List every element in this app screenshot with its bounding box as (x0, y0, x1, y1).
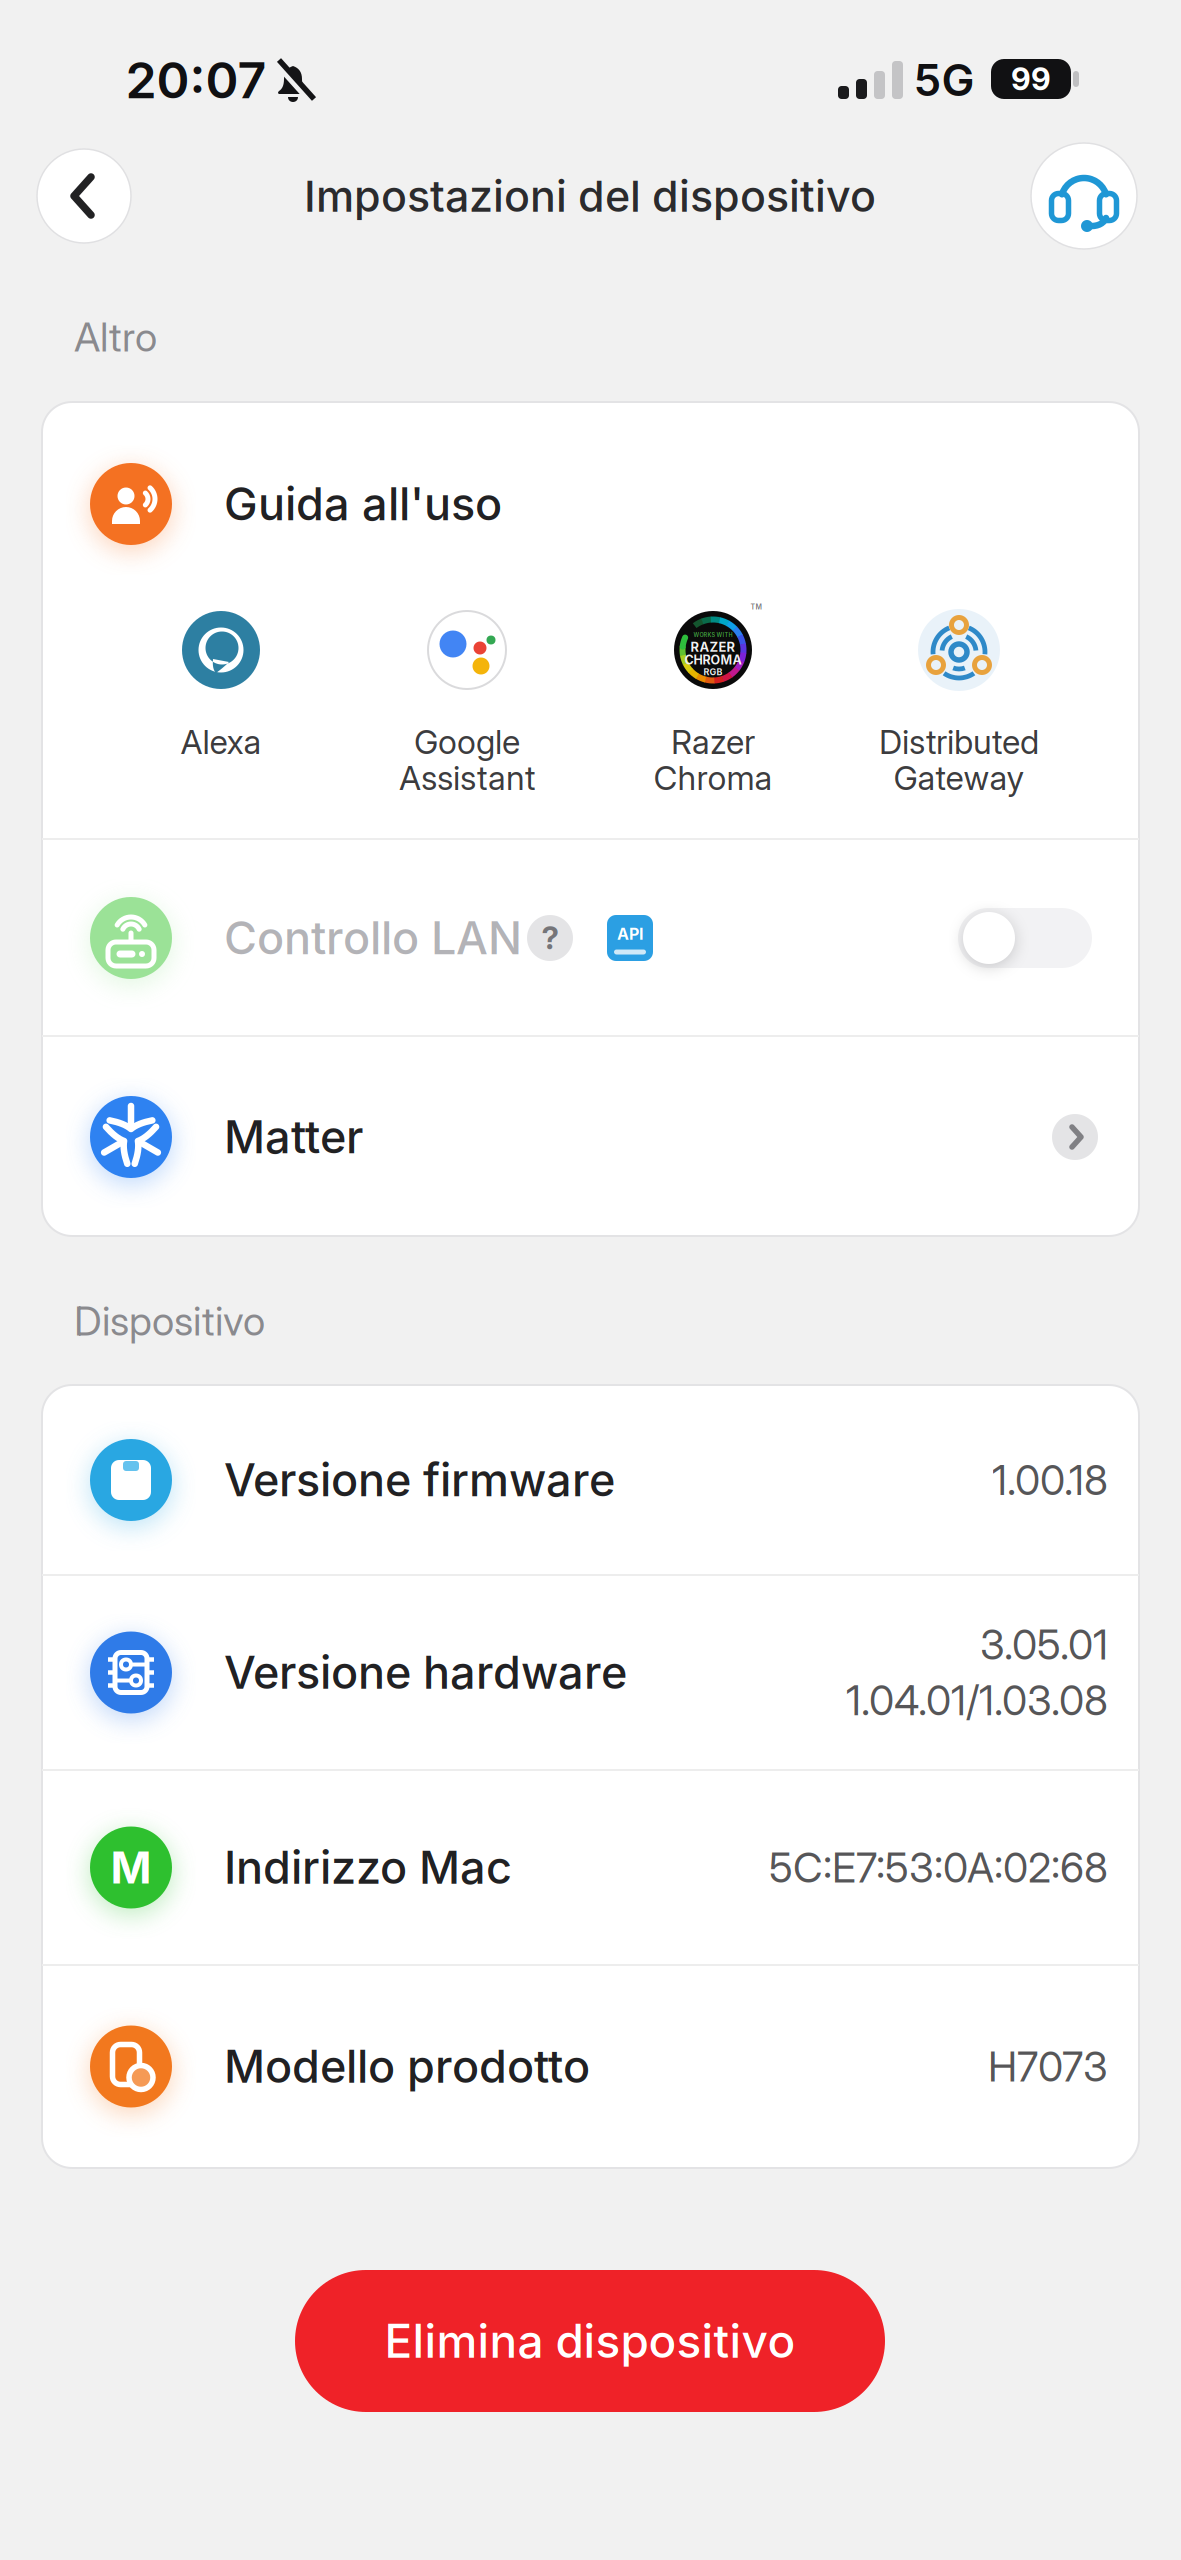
staticText: Indirizzo Mac (224, 1840, 512, 1895)
button[interactable]: Controllo LAN (958, 908, 1092, 968)
staticText: M (110, 1841, 151, 1894)
staticText: Controllo LAN (224, 911, 522, 965)
button[interactable]: Assistenza (1031, 143, 1137, 249)
staticText: Dispositivo (74, 1297, 265, 1345)
button[interactable]: Alexa (111, 574, 331, 804)
staticText: RGB (703, 667, 722, 677)
staticText: Razer (671, 722, 755, 762)
button[interactable]: Aiuto (527, 915, 573, 961)
staticText: Alexa (180, 722, 261, 762)
staticText: Google (414, 722, 520, 762)
button[interactable]: API (607, 915, 653, 961)
button[interactable]: Google (357, 574, 577, 804)
staticText: 1.04.01/1.03.08 (846, 1675, 1108, 1725)
staticText: Impostazioni del dispositivo (304, 170, 876, 222)
staticText: 99 (1011, 60, 1051, 98)
staticText: Guida all'uso (224, 477, 502, 531)
staticText: Matter (224, 1110, 363, 1164)
staticText: Altro (74, 313, 157, 361)
staticText: Chroma (653, 758, 772, 798)
staticText: Modello prodotto (224, 2039, 590, 2094)
staticText: Distributed (879, 722, 1039, 762)
staticText: Assistant (399, 758, 535, 798)
staticText: 20:07 (125, 50, 266, 110)
staticText: H7073 (988, 2042, 1108, 2091)
staticText: TM (750, 603, 761, 611)
button[interactable]: Matter (42, 1037, 1139, 1236)
button[interactable]: WORKS WITH (603, 574, 823, 804)
staticText: API (617, 924, 643, 944)
staticText: ? (541, 919, 558, 957)
staticText: 5G (913, 53, 974, 107)
staticText: 5C:E7:53:0A:02:68 (769, 1843, 1108, 1892)
button[interactable]: Distributed (849, 574, 1069, 804)
staticText: RAZER (690, 639, 735, 655)
staticText: Gateway (893, 758, 1024, 798)
staticText: CHROMA (684, 652, 741, 667)
button[interactable]: Elimina dispositivo (295, 2270, 885, 2412)
staticText: WORKS WITH (693, 632, 732, 638)
staticText: 1.00.18 (992, 1455, 1108, 1505)
button[interactable]: Guida all'uso (42, 403, 1139, 603)
button[interactable]: Back (37, 149, 131, 243)
staticText: Versione firmware (224, 1453, 615, 1507)
staticText: 3.05.01 (980, 1620, 1108, 1669)
staticText: Versione hardware (224, 1645, 627, 1700)
staticText: Elimina dispositivo (384, 2313, 795, 2369)
